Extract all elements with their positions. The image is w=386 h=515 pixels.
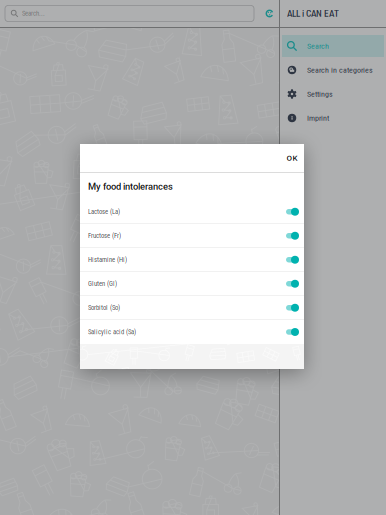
- button[interactable]: Fructose (Fr): [80, 224, 304, 248]
- button[interactable]: Settings: [282, 83, 384, 105]
- staticText: Gluten (Gl): [88, 280, 117, 288]
- staticText: Search: [307, 41, 329, 51]
- button[interactable]: Imprint: [282, 107, 384, 129]
- button[interactable]: OK: [281, 142, 303, 173]
- staticText: Imprint: [307, 113, 329, 123]
- button[interactable]: Salicylic acid (Sa): [80, 320, 304, 344]
- button[interactable]: Toggle: [286, 231, 299, 241]
- button[interactable]: Toggle: [286, 303, 299, 313]
- button[interactable]: Change theme: [261, 5, 278, 22]
- button[interactable]: Toggle: [286, 279, 299, 289]
- button[interactable]: Lactose (La): [80, 200, 304, 224]
- staticText: Search...: [22, 10, 45, 17]
- button[interactable]: Toggle: [286, 255, 299, 265]
- staticText: Settings: [307, 89, 333, 99]
- button[interactable]: Toggle: [286, 327, 299, 337]
- staticText: Lactose (La): [88, 208, 120, 216]
- button[interactable]: Search: [282, 35, 384, 57]
- staticText: OK: [286, 153, 297, 163]
- staticText: Sorbitol (So): [88, 304, 120, 312]
- staticText: Histamine (Hi): [88, 256, 127, 264]
- staticText: Search in categories: [307, 65, 373, 75]
- button[interactable]: Toggle: [286, 207, 299, 217]
- button[interactable]: Gluten (Gl): [80, 272, 304, 296]
- button[interactable]: Sorbitol (So): [80, 296, 304, 320]
- staticText: My food intolerances: [88, 181, 173, 192]
- staticText: Salicylic acid (Sa): [88, 328, 136, 336]
- button[interactable]: Search in categories: [282, 59, 384, 81]
- button[interactable]: Histamine (Hi): [80, 248, 304, 272]
- staticText: ALL i CAN EAT: [287, 8, 339, 19]
- staticText: Fructose (Fr): [88, 232, 121, 240]
- button[interactable]: Search...: [5, 5, 254, 21]
